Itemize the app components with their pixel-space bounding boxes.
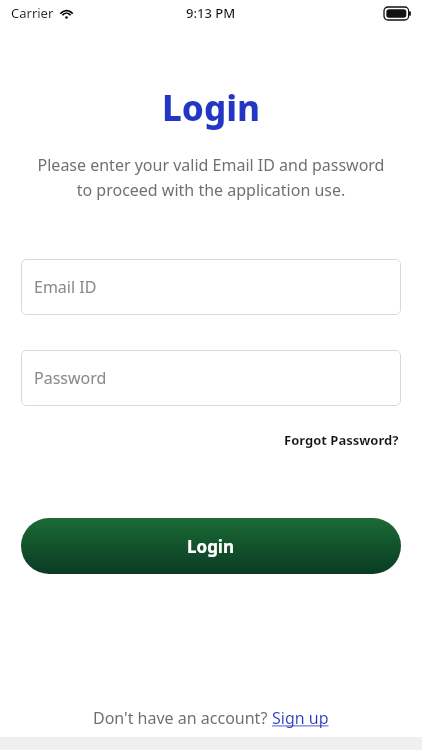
staticText: Sign up — [272, 707, 329, 729]
staticText: Password — [34, 367, 107, 389]
button[interactable]: Sign up — [272, 707, 329, 729]
staticText: Email ID — [34, 276, 97, 298]
staticText: Forgot Password? — [284, 431, 399, 449]
staticText: Please enter your valid Email ID and pas… — [34, 154, 388, 200]
button[interactable]: Login — [21, 518, 401, 574]
staticText: Login — [0, 84, 422, 132]
button[interactable]: Password — [21, 350, 401, 406]
staticText: Don't have an account? — [93, 707, 272, 729]
button[interactable]: Email ID — [21, 259, 401, 315]
button[interactable]: Forgot Password? — [282, 428, 401, 452]
staticText: Login — [187, 535, 235, 558]
staticText: 9:13 PM — [186, 4, 236, 22]
staticText: Carrier — [11, 4, 54, 22]
